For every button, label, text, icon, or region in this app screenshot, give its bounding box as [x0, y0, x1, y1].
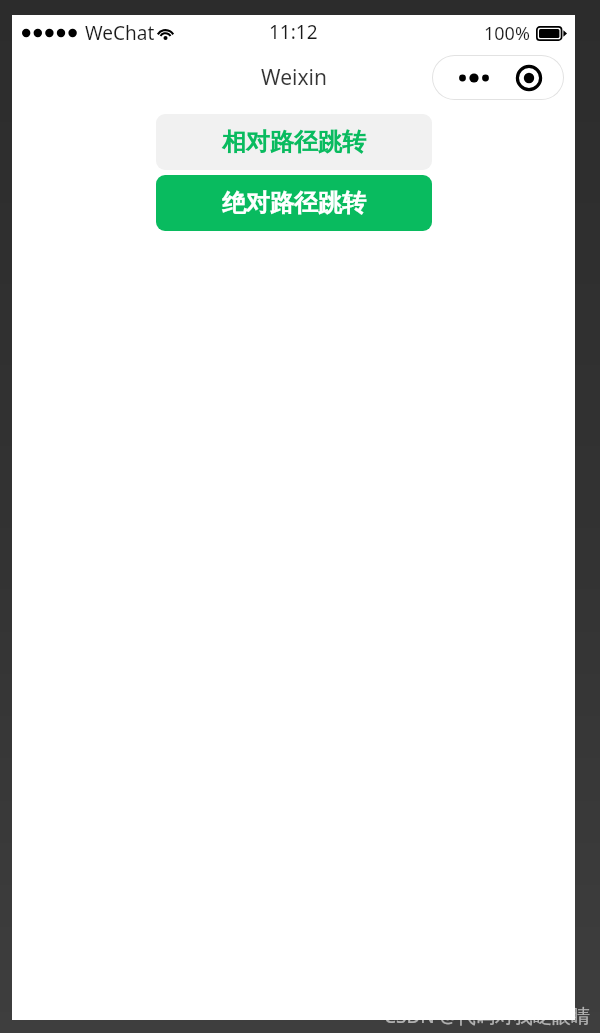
staticText: 11:12 — [269, 19, 318, 45]
staticText: WeChat — [85, 20, 155, 46]
button[interactable]: More options and close — [432, 55, 564, 100]
staticText: Weixin — [261, 63, 327, 92]
staticText: 相对路径跳转 — [222, 127, 366, 157]
staticText: CSDN @代码对我眨眼睛 — [384, 1003, 590, 1029]
button[interactable]: 绝对路径跳转 — [156, 175, 432, 231]
staticText: 绝对路径跳转 — [222, 188, 366, 218]
staticText: 100% — [484, 21, 530, 46]
button[interactable]: 相对路径跳转 — [156, 114, 432, 170]
